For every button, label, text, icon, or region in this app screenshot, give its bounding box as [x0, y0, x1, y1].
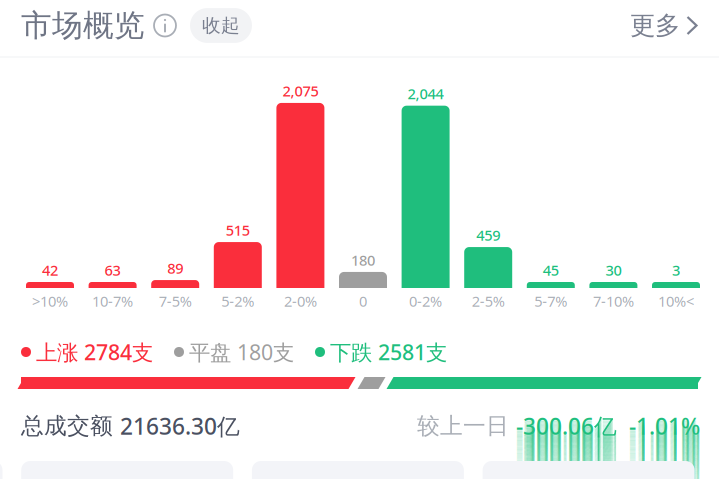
- staticText: -300.06亿 -1.01%: [516, 441, 700, 472]
- staticText: -300.06亿 -1.01%: [516, 456, 700, 479]
- staticText: -300.06亿 -1.01%: [516, 413, 700, 443]
- staticText: 45: [543, 260, 559, 280]
- staticText: -300.06亿 -1.01%: [516, 473, 700, 479]
- staticText: 更多: [630, 10, 680, 41]
- staticText: 0-2%: [409, 291, 442, 311]
- staticText: -300.06亿 -1.01%: [516, 474, 700, 479]
- staticText: -300.06亿 -1.01%: [516, 458, 700, 479]
- button[interactable]: [483, 461, 695, 479]
- staticText: 2,075: [282, 81, 318, 101]
- staticText: 515: [226, 220, 250, 240]
- staticText: 上涨 2784支: [36, 338, 153, 366]
- staticText: -300.06亿 -1.01%: [516, 417, 700, 447]
- staticText: -300.06亿 -1.01%: [516, 475, 700, 479]
- staticText: 30: [605, 260, 621, 280]
- staticText: 459: [476, 225, 500, 245]
- staticText: -300.06亿 -1.01%: [516, 423, 700, 453]
- staticText: -300.06亿 -1.01%: [516, 438, 700, 468]
- staticText: 42: [42, 260, 58, 280]
- staticText: -300.06亿 -1.01%: [516, 452, 700, 479]
- staticText: -300.06亿 -1.01%: [516, 421, 700, 451]
- staticText: -300.06亿 -1.01%: [516, 431, 700, 461]
- staticText: -300.06亿 -1.01%: [516, 444, 700, 474]
- staticText: 0: [359, 291, 367, 311]
- staticText: -300.06亿 -1.01%: [516, 436, 700, 466]
- staticText: -300.06亿 -1.01%: [516, 443, 700, 473]
- staticText: -300.06亿 -1.01%: [516, 435, 700, 465]
- button[interactable]: 更多: [630, 10, 698, 41]
- staticText: -300.06亿 -1.01%: [516, 465, 700, 479]
- button[interactable]: 收起: [190, 8, 252, 43]
- staticText: -300.06亿 -1.01%: [516, 411, 700, 441]
- staticText: -300.06亿 -1.01%: [516, 447, 700, 477]
- staticText: -300.06亿 -1.01%: [516, 467, 700, 479]
- staticText: -300.06亿 -1.01%: [516, 462, 700, 479]
- staticText: 180: [351, 250, 375, 270]
- staticText: 较上一日: [417, 412, 516, 440]
- staticText: 7-10%: [593, 291, 634, 311]
- staticText: 7-5%: [159, 291, 192, 311]
- staticText: -300.06亿 -1.01%: [516, 460, 700, 479]
- staticText: -300.06亿 -1.01%: [516, 453, 700, 479]
- staticText: 21636.30亿: [120, 411, 240, 441]
- staticText: 10%<: [658, 291, 694, 311]
- staticText: -300.06亿 -1.01%: [516, 448, 700, 478]
- staticText: -300.06亿 -1.01%: [516, 457, 700, 479]
- staticText: 总成交额: [21, 412, 120, 440]
- staticText: -300.06亿 -1.01%: [516, 454, 700, 479]
- staticText: 平盘 180支: [189, 338, 294, 366]
- staticText: 5-7%: [534, 291, 567, 311]
- staticText: 3: [672, 260, 680, 280]
- staticText: -300.06亿 -1.01%: [516, 477, 700, 479]
- staticText: -300.06亿 -1.01%: [516, 461, 700, 479]
- staticText: -300.06亿 -1.01%: [516, 432, 700, 462]
- staticText: -300.06亿 -1.01%: [516, 449, 700, 479]
- staticText: 下跌 2581支: [330, 338, 447, 366]
- staticText: -300.06亿 -1.01%: [516, 414, 700, 444]
- staticText: -300.06亿 -1.01%: [516, 440, 700, 470]
- staticText: -300.06亿 -1.01%: [516, 464, 700, 479]
- staticText: 89: [167, 258, 183, 278]
- staticText: -300.06亿 -1.01%: [516, 427, 700, 457]
- staticText: >10%: [32, 291, 68, 311]
- staticText: -300.06亿 -1.01%: [516, 451, 700, 479]
- staticText: 2-5%: [472, 291, 505, 311]
- staticText: -300.06亿 -1.01%: [516, 426, 700, 456]
- staticText: 5-2%: [221, 291, 254, 311]
- staticText: -300.06亿 -1.01%: [516, 415, 700, 446]
- staticText: 市场概览: [21, 7, 145, 44]
- staticText: -300.06亿 -1.01%: [516, 466, 700, 479]
- staticText: -300.06亿 -1.01%: [516, 418, 700, 448]
- staticText: -300.06亿 -1.01%: [516, 478, 700, 479]
- staticText: -300.06亿 -1.01%: [516, 439, 700, 469]
- staticText: -300.06亿 -1.01%: [516, 430, 700, 460]
- staticText: 2-0%: [284, 291, 317, 311]
- staticText: 10-7%: [92, 291, 133, 311]
- staticText: 63: [105, 260, 121, 280]
- staticText: -300.06亿 -1.01%: [516, 445, 700, 475]
- staticText: -300.06亿 -1.01%: [516, 425, 700, 455]
- staticText: -300.06亿 -1.01%: [516, 434, 700, 464]
- button[interactable]: [0, 461, 2, 479]
- staticText: -300.06亿 -1.01%: [516, 428, 700, 459]
- staticText: -300.06亿 -1.01%: [516, 471, 700, 479]
- staticText: 2,044: [408, 84, 444, 103]
- staticText: 收起: [202, 14, 240, 37]
- staticText: -300.06亿 -1.01%: [516, 469, 700, 479]
- staticText: -300.06亿 -1.01%: [516, 419, 700, 449]
- staticText: -300.06亿 -1.01%: [516, 422, 700, 452]
- staticText: -300.06亿 -1.01%: [516, 470, 700, 479]
